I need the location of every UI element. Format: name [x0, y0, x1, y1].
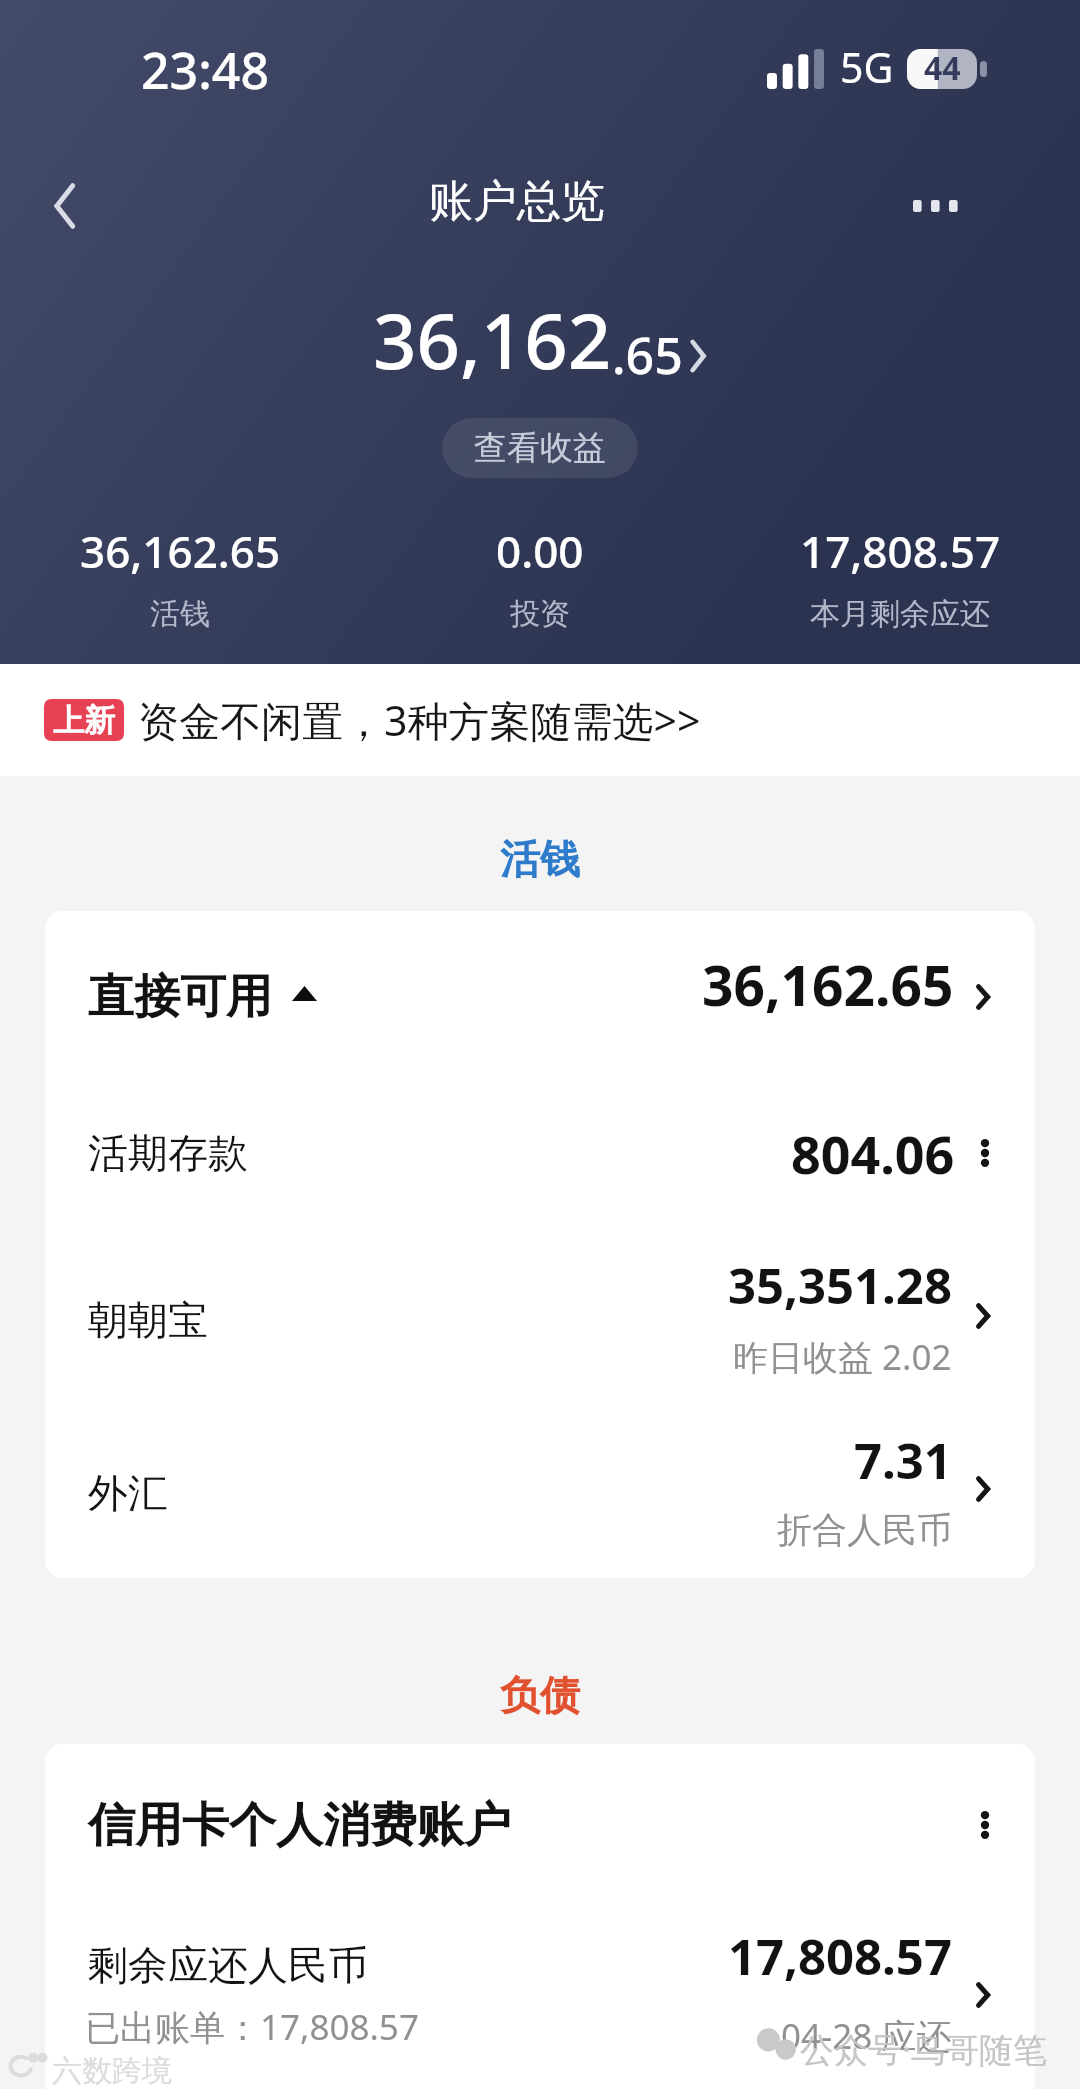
staticText: 昨日收益 2.02 — [733, 1333, 952, 1380]
button[interactable]: 0.00 — [360, 521, 720, 633]
staticText: 公众号·鸟哥随笔 — [800, 2026, 1048, 2072]
button[interactable]: More options — [887, 150, 987, 260]
staticText: 04-28 应还 — [781, 2012, 952, 2059]
staticText: 朝朝宝 — [88, 1295, 208, 1345]
staticText: 44 — [924, 46, 961, 90]
staticText: 36,162 — [373, 288, 612, 392]
staticText: 本月剩余应还 — [810, 595, 990, 633]
staticText: 23:48 — [141, 36, 269, 104]
staticText: 查看收益 — [474, 427, 606, 469]
staticText: 17,808.57 — [800, 521, 1001, 581]
staticText: 折合人民币 — [777, 1508, 952, 1552]
button[interactable]: 朝朝宝 — [45, 1252, 1035, 1380]
staticText: 账户总览 — [429, 174, 605, 229]
staticText: 已出账单：17,808.57 — [85, 2003, 419, 2051]
button[interactable]: 上新 — [0, 664, 1080, 776]
button[interactable]: 直接可用 — [45, 945, 1035, 1049]
staticText: 直接可用 — [88, 968, 272, 1026]
staticText: 六数跨境 — [52, 2052, 172, 2089]
staticText: 804.06 — [791, 1118, 955, 1189]
button[interactable]: 17,808.57 — [720, 521, 1080, 633]
button[interactable]: Total balance 36,162.65 — [373, 288, 707, 392]
button[interactable]: Back — [15, 150, 115, 260]
staticText: 活钱 — [500, 834, 580, 884]
staticText: 信用卡个人消费账户 — [88, 1796, 511, 1855]
button[interactable]: 活期存款 — [45, 1101, 1035, 1205]
staticText: 5G — [840, 39, 894, 95]
staticText: 活钱 — [150, 595, 210, 633]
staticText: 17,808.57 — [728, 1923, 952, 1990]
button[interactable]: 外汇 — [45, 1425, 1035, 1553]
staticText: 36,162.65 — [80, 521, 281, 581]
staticText: 剩余应还人民币 — [88, 1940, 368, 1990]
staticText: 活期存款 — [88, 1128, 248, 1178]
staticText: 7.31 — [854, 1427, 952, 1494]
button[interactable]: 剩余应还人民币 — [45, 1931, 1035, 2059]
button[interactable]: 信用卡个人消费账户 — [45, 1773, 1035, 1877]
button[interactable]: 查看收益 — [442, 418, 638, 478]
staticText: 上新 — [53, 701, 115, 740]
staticText: 投资 — [510, 595, 570, 633]
staticText: 外汇 — [88, 1468, 168, 1518]
staticText: 0.00 — [496, 521, 584, 581]
staticText: .65 — [612, 321, 683, 389]
button[interactable]: 36,162.65 — [0, 521, 360, 633]
staticText: 负债 — [500, 1670, 580, 1720]
staticText: 36,162.65 — [702, 947, 954, 1022]
staticText: 35,351.28 — [728, 1252, 952, 1319]
staticText: 资金不闲置，3种方案随需选>> — [138, 692, 701, 748]
